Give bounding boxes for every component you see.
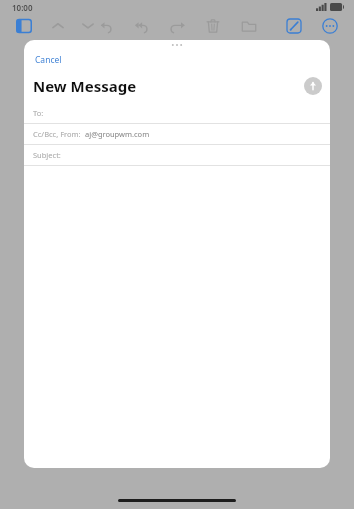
- staticText: New Message: [33, 76, 137, 96]
- button[interactable]: New message: [284, 16, 304, 36]
- button[interactable]: Move to folder: [239, 16, 259, 36]
- button[interactable]: To:: [24, 103, 330, 124]
- button[interactable]: Next message: [78, 16, 98, 36]
- button[interactable]: Reply all: [131, 16, 151, 36]
- button[interactable]: Forward: [167, 16, 187, 36]
- staticText: aj@groupwm.com: [85, 129, 150, 139]
- button[interactable]: Delete: [203, 16, 223, 36]
- staticText: Cc/Bcc, From:: [33, 129, 81, 139]
- staticText: Cancel: [35, 54, 62, 66]
- button[interactable]: Previous message: [48, 16, 68, 36]
- button[interactable]: More options: [320, 16, 340, 36]
- button[interactable]: Cancel: [33, 53, 64, 67]
- button[interactable]: Sidebar: [14, 16, 34, 36]
- staticText: Subject:: [33, 150, 61, 160]
- staticText: To:: [33, 108, 44, 118]
- button[interactable]: Subject:: [24, 145, 330, 166]
- button[interactable]: Send: [304, 77, 322, 95]
- button[interactable]: Reply: [95, 16, 115, 36]
- button[interactable]: Cc/Bcc, From:: [24, 124, 330, 145]
- staticText: 10:00: [12, 2, 33, 13]
